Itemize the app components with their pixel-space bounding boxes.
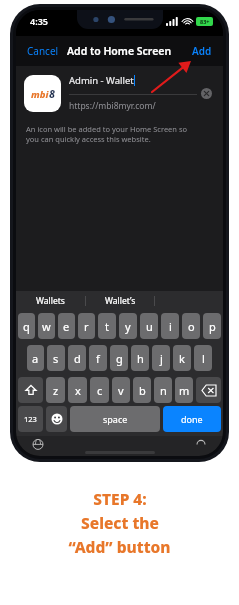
button[interactable]: u	[140, 313, 158, 339]
button[interactable]: j	[152, 345, 170, 371]
staticText: o	[188, 319, 195, 334]
staticText: i	[169, 319, 172, 334]
button[interactable]: Add	[181, 38, 223, 64]
staticText: Add to Home Screen	[67, 44, 172, 58]
staticText: mbi	[31, 88, 49, 101]
button[interactable]: h	[131, 345, 149, 371]
button[interactable]: g	[110, 345, 128, 371]
staticText: space	[103, 413, 128, 425]
button[interactable]: done	[163, 406, 221, 432]
button[interactable]: k	[173, 345, 191, 371]
button[interactable]: d	[68, 345, 86, 371]
button[interactable]: Cancel	[16, 38, 70, 64]
staticText: h	[137, 351, 144, 366]
staticText: done	[181, 413, 203, 425]
button[interactable]: c	[90, 377, 109, 403]
staticText: Add	[192, 44, 212, 58]
staticText: STEP 4:	[93, 488, 147, 509]
staticText: b	[139, 383, 146, 398]
button[interactable]: Shift	[18, 377, 43, 403]
button[interactable]: l	[194, 345, 212, 371]
button[interactable]: 123	[18, 406, 43, 432]
staticText: t	[105, 319, 109, 334]
button[interactable]: space	[70, 406, 160, 432]
staticText: l	[202, 351, 205, 366]
staticText: https://mbi8myr.com/	[69, 100, 156, 112]
staticText: g	[116, 351, 123, 366]
staticText: An icon will be added to your Home Scree…	[26, 124, 199, 144]
staticText: 8	[49, 87, 55, 101]
staticText: e	[63, 319, 70, 334]
button[interactable]: Clear text	[197, 84, 215, 102]
staticText: a	[32, 351, 39, 366]
button[interactable]: b	[133, 377, 151, 403]
staticText: y	[125, 319, 131, 334]
staticText: s	[53, 351, 59, 366]
staticText: Wallets	[36, 295, 65, 307]
staticText: 83+	[200, 18, 210, 25]
button[interactable]: a	[27, 345, 44, 371]
button[interactable]: Wallets	[16, 291, 85, 310]
staticText: 4:35	[30, 15, 48, 27]
staticText: x	[75, 383, 81, 398]
button[interactable]: o	[182, 313, 200, 339]
staticText: Admin - Wallet	[69, 74, 134, 87]
button[interactable]: e	[58, 313, 75, 339]
staticText: r	[84, 319, 89, 334]
button[interactable]: r	[78, 313, 95, 339]
button[interactable]: y	[119, 313, 137, 339]
button[interactable]: Wallet’s	[86, 291, 154, 310]
staticText: u	[146, 319, 153, 334]
staticText: v	[118, 383, 124, 398]
staticText: j	[160, 351, 163, 366]
staticText: z	[53, 383, 59, 398]
staticText: Wallet’s	[105, 295, 136, 307]
staticText: f	[96, 351, 100, 366]
button[interactable]: n	[154, 377, 172, 403]
staticText: k	[179, 351, 185, 366]
button[interactable]: Backspace	[196, 377, 221, 403]
staticText: d	[74, 351, 81, 366]
button[interactable]: Emoji	[46, 406, 67, 432]
button[interactable]: i	[161, 313, 179, 339]
staticText: “Add” button	[68, 536, 171, 557]
staticText: Select the	[81, 512, 159, 533]
staticText: c	[97, 383, 103, 398]
staticText: m	[179, 383, 190, 398]
staticText: 123	[24, 414, 37, 424]
button[interactable]: v	[112, 377, 130, 403]
button[interactable]: p	[203, 313, 221, 339]
button[interactable]: z	[46, 377, 65, 403]
staticText: n	[160, 383, 167, 398]
button[interactable]: f	[89, 345, 107, 371]
button[interactable]: x	[68, 377, 87, 403]
button[interactable]: s	[47, 345, 65, 371]
button[interactable]: q	[18, 313, 35, 339]
button[interactable]: t	[98, 313, 116, 339]
staticText: Cancel	[27, 44, 59, 58]
staticText: q	[23, 319, 30, 334]
staticText: p	[209, 319, 216, 334]
button[interactable]: m	[175, 377, 193, 403]
button[interactable]: w	[38, 313, 55, 339]
staticText: w	[42, 319, 51, 334]
